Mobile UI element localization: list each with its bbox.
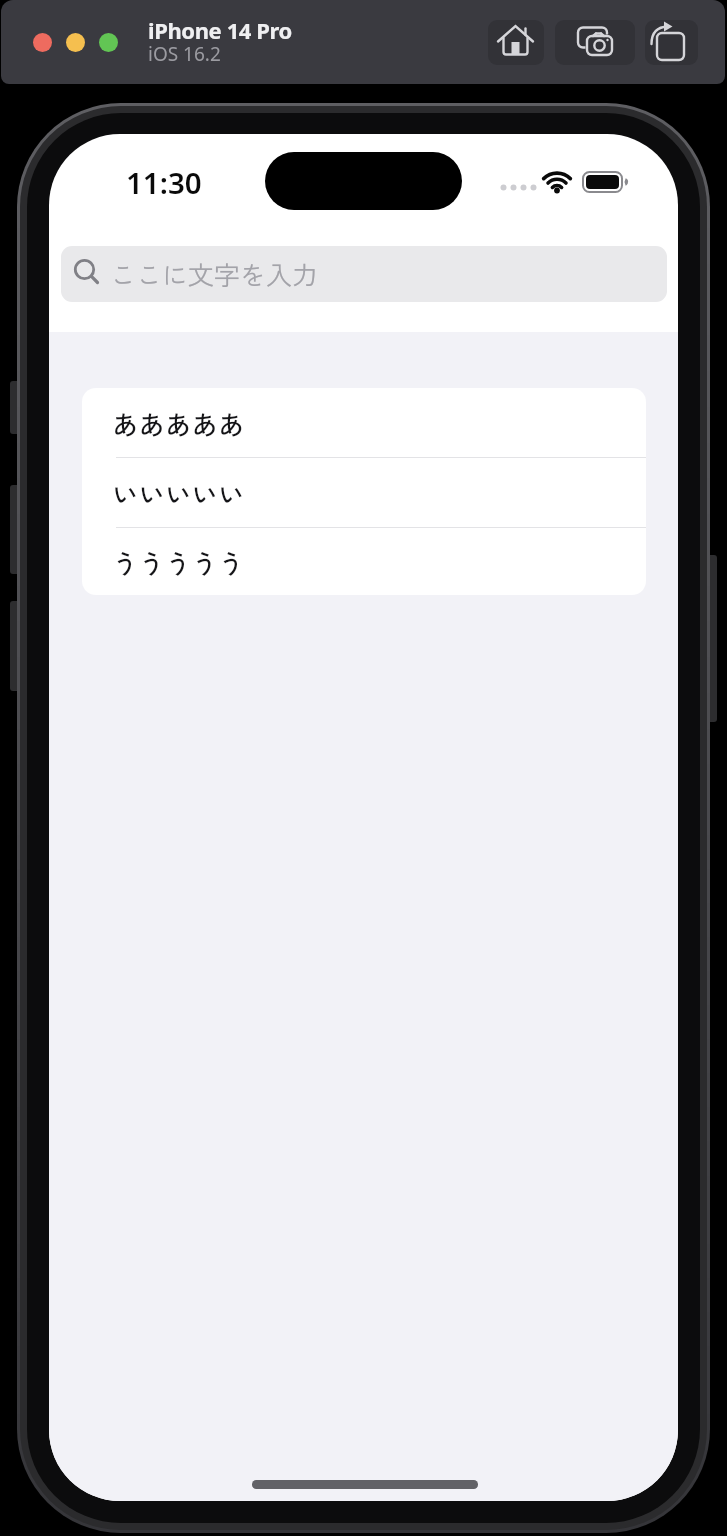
staticText: あああああ	[112, 404, 245, 442]
button[interactable]	[33, 33, 52, 52]
button[interactable]	[645, 20, 698, 65]
button[interactable]	[555, 20, 635, 65]
staticText: いいいいい	[112, 474, 245, 512]
staticText: 11:30	[126, 162, 202, 202]
button[interactable]: あああああ	[82, 388, 646, 457]
button[interactable]	[99, 33, 118, 52]
button[interactable]: ここに文字を入力	[61, 246, 667, 302]
button[interactable]	[488, 20, 544, 65]
staticText: ここに文字を入力	[110, 255, 319, 293]
button[interactable]: ううううう	[82, 528, 646, 595]
staticText: iOS 16.2	[148, 41, 221, 67]
staticText: iPhone 14 Pro	[148, 15, 292, 45]
staticText: ううううう	[112, 543, 245, 581]
button[interactable]: いいいいい	[82, 458, 646, 527]
button[interactable]	[66, 33, 85, 52]
